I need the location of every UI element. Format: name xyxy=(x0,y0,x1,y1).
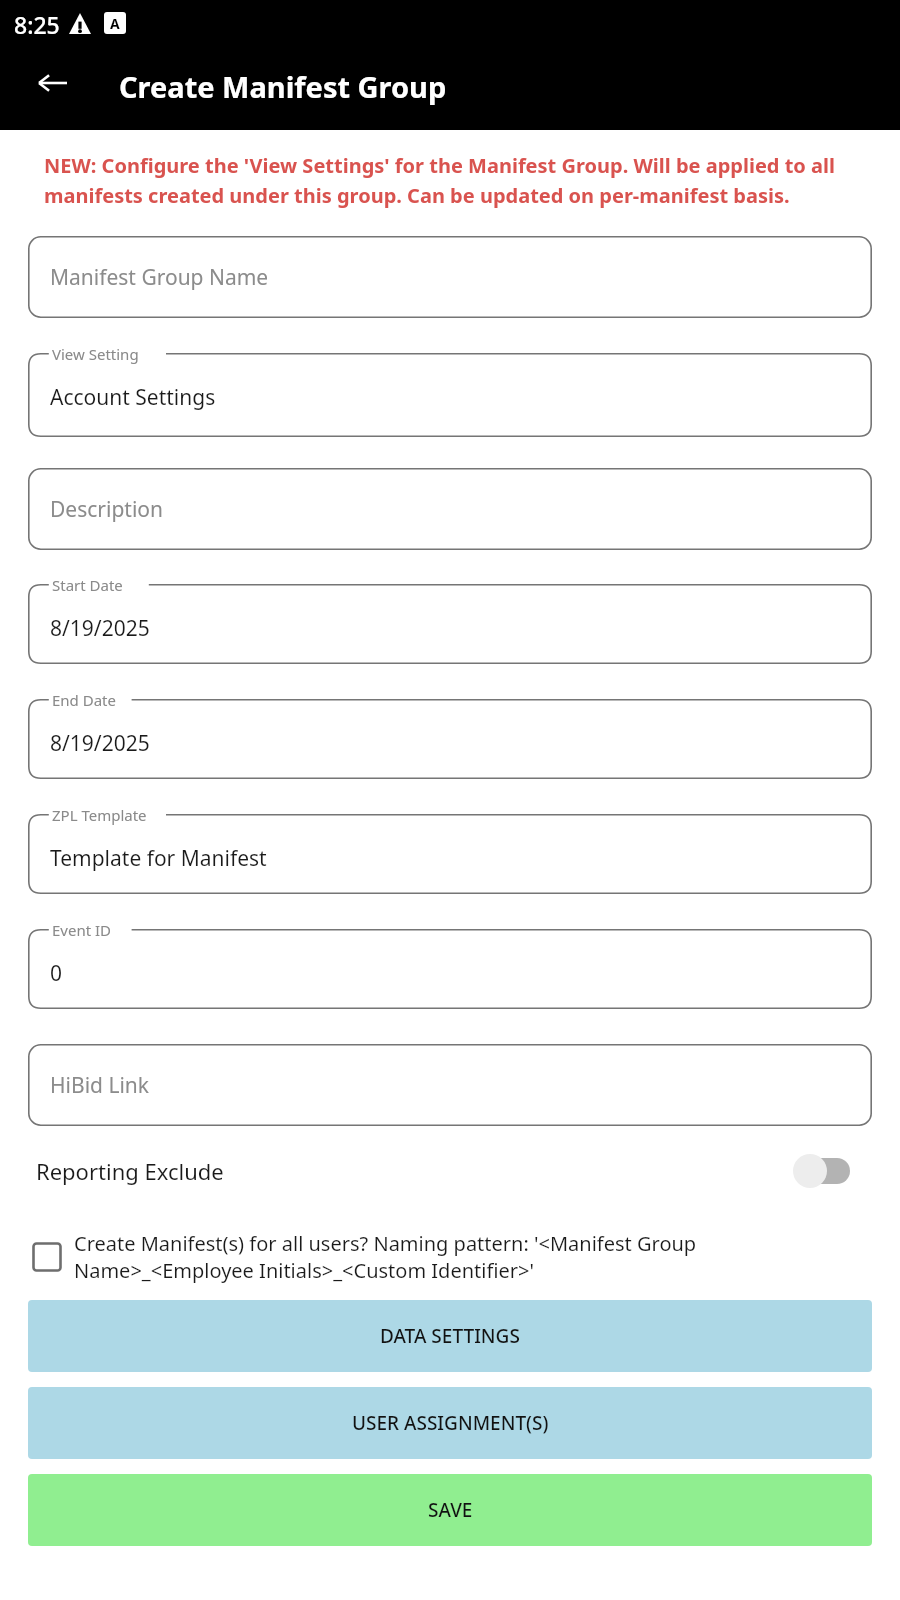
staticText: Template for Manifest xyxy=(50,844,267,873)
staticText: Create Manifest(s) for all users? Naming… xyxy=(74,1230,872,1284)
button[interactable]: Reporting Exclude xyxy=(28,1142,872,1200)
staticText: 8:25 xyxy=(14,9,60,40)
button[interactable]: Manifest Group Name xyxy=(28,236,872,318)
staticText: DATA SETTINGS xyxy=(380,1323,520,1349)
button[interactable]: USER ASSIGNMENT(S) xyxy=(28,1387,872,1459)
button[interactable]: Create Manifest(s) for all users? Naming… xyxy=(28,1230,872,1284)
button[interactable]: View Setting xyxy=(28,353,872,437)
staticText: Event ID xyxy=(52,920,112,940)
button[interactable]: ZPL Template xyxy=(28,814,872,894)
button[interactable]: Event ID xyxy=(28,929,872,1009)
staticText: NEW: Configure the 'View Settings' for t… xyxy=(44,152,866,209)
button[interactable]: HiBid Link xyxy=(28,1044,872,1126)
button[interactable]: Back xyxy=(22,52,84,114)
staticText: End Date xyxy=(52,690,116,710)
staticText: 0 xyxy=(50,959,63,988)
button[interactable]: SAVE xyxy=(28,1474,872,1546)
staticText: Account Settings xyxy=(50,383,216,412)
button[interactable]: End Date xyxy=(28,699,872,779)
staticText: 8/19/2025 xyxy=(50,614,150,643)
staticText: A xyxy=(110,14,120,33)
staticText: Start Date xyxy=(52,575,123,595)
staticText: View Setting xyxy=(52,344,139,364)
staticText: Create Manifest Group xyxy=(119,67,447,106)
button[interactable]: Description xyxy=(28,468,872,550)
button[interactable]: DATA SETTINGS xyxy=(28,1300,872,1372)
staticText: Description xyxy=(50,495,164,524)
staticText: USER ASSIGNMENT(S) xyxy=(352,1410,549,1436)
staticText: 8/19/2025 xyxy=(50,729,150,758)
staticText: SAVE xyxy=(428,1497,473,1523)
staticText: Manifest Group Name xyxy=(50,263,269,292)
staticText: HiBid Link xyxy=(50,1071,150,1100)
button[interactable]: Start Date xyxy=(28,584,872,664)
staticText: ZPL Template xyxy=(52,805,147,825)
staticText: Reporting Exclude xyxy=(36,1156,224,1186)
